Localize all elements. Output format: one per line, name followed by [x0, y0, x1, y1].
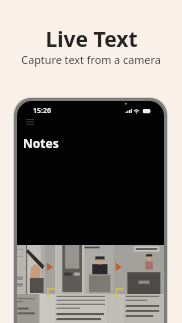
staticText: 15:26: [33, 106, 51, 116]
button[interactable]: Menu: [26, 119, 34, 126]
button[interactable]: [17, 245, 164, 323]
staticText: Live Text: [45, 25, 138, 54]
staticText: Capture text from a camera: [21, 52, 161, 67]
staticText: Notes: [23, 135, 59, 151]
